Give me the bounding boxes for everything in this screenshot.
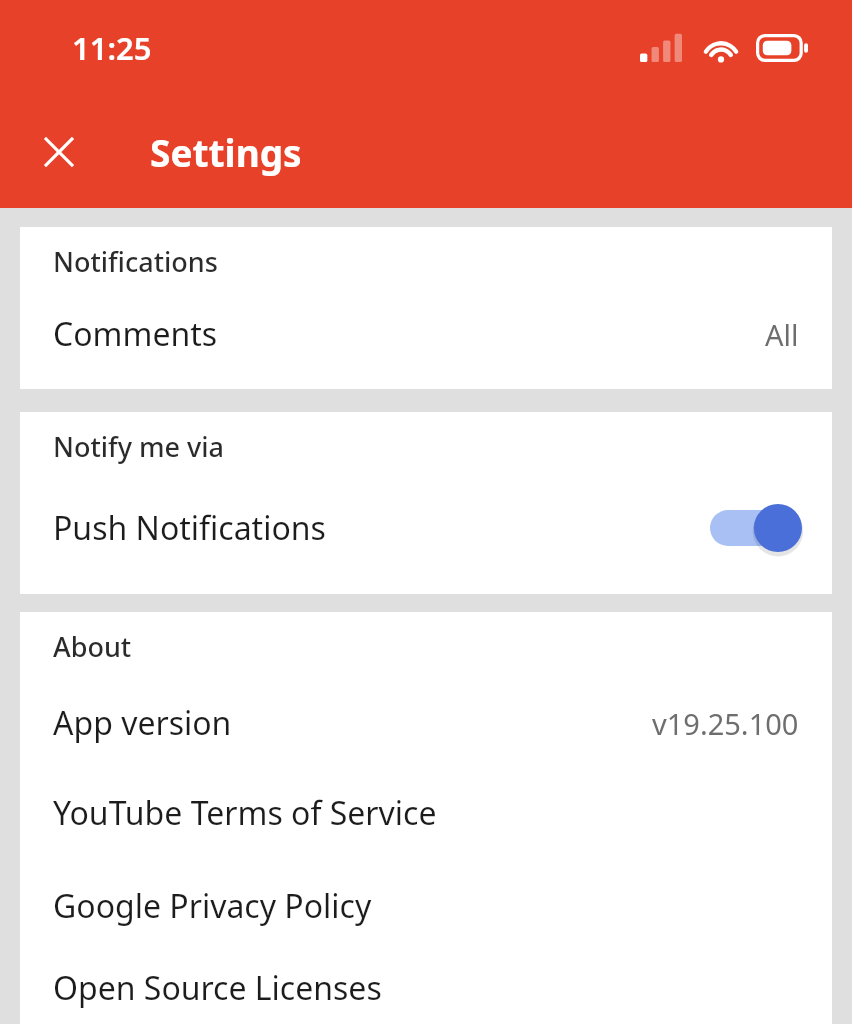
- staticText: v19.25.100: [652, 704, 799, 743]
- staticText: Settings: [150, 127, 302, 177]
- staticText: Push Notifications: [53, 506, 710, 550]
- staticText: Open Source Licenses: [53, 966, 799, 1010]
- staticText: Comments: [53, 312, 765, 356]
- staticText: About: [53, 628, 132, 665]
- button[interactable]: YouTube Terms of Service: [20, 766, 832, 859]
- staticText: 11:25: [72, 27, 152, 69]
- staticText: Notify me via: [53, 428, 225, 465]
- button[interactable]: Close: [23, 116, 95, 188]
- button[interactable]: Comments: [20, 295, 832, 373]
- staticText: YouTube Terms of Service: [53, 791, 799, 835]
- staticText: All: [765, 315, 799, 354]
- staticText: Notifications: [53, 243, 218, 280]
- button[interactable]: Push Notifications: [20, 480, 832, 575]
- button[interactable]: App version: [20, 680, 832, 766]
- button[interactable]: Open Source Licenses: [20, 952, 832, 1024]
- button[interactable]: Google Privacy Policy: [20, 859, 832, 952]
- staticText: App version: [53, 701, 652, 745]
- staticText: Google Privacy Policy: [53, 884, 799, 928]
